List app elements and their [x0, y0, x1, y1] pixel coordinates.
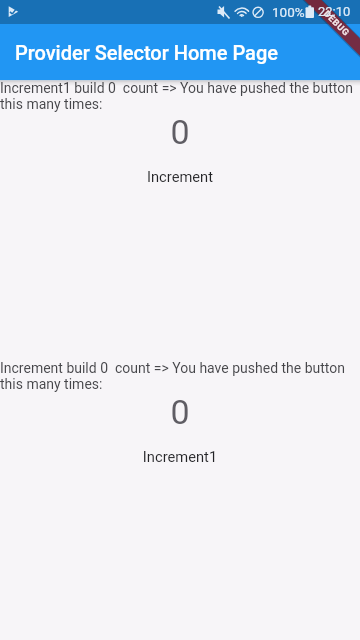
staticText: Provider Selector Home Page [15, 41, 278, 64]
staticText: 100% [272, 4, 305, 20]
button[interactable]: Increment1 [0, 448, 360, 465]
staticText: 22:10 [318, 4, 351, 19]
staticText: 0 [0, 392, 360, 432]
button[interactable]: Increment [0, 168, 360, 185]
staticText: 0 [0, 112, 360, 152]
staticText: Increment build 0 count => You have push… [0, 360, 360, 392]
staticText: Increment1 build 0 count => You have pus… [0, 80, 360, 112]
